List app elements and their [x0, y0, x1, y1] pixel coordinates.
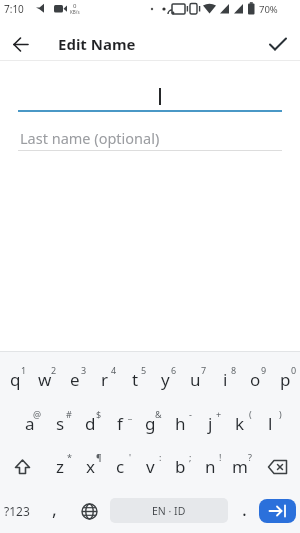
- staticText: !: [219, 451, 222, 463]
- staticText: ,: [52, 497, 57, 522]
- staticText: (: [249, 408, 252, 420]
- staticText: n: [205, 455, 216, 478]
- staticText: k: [235, 412, 245, 435]
- button[interactable]: a: [15, 402, 45, 445]
- button[interactable]: .: [230, 489, 258, 533]
- button[interactable]: z: [45, 445, 75, 488]
- staticText: 70%: [259, 3, 278, 16]
- button[interactable]: ,: [38, 489, 70, 533]
- staticText: b: [175, 455, 186, 478]
- staticText: s: [56, 412, 65, 435]
- staticText: c: [116, 455, 125, 478]
- staticText: ': [129, 451, 132, 463]
- button[interactable]: [70, 489, 108, 533]
- button[interactable]: q: [0, 358, 30, 401]
- staticText: &: [155, 408, 162, 420]
- staticText: $: [96, 408, 102, 420]
- staticText: h: [175, 412, 186, 435]
- staticText: w: [38, 368, 52, 391]
- staticText: 3: [81, 364, 87, 376]
- button[interactable]: EN · ID: [110, 498, 228, 523]
- staticText: y: [161, 368, 170, 391]
- staticText: a: [25, 412, 35, 435]
- button[interactable]: [6, 29, 36, 59]
- button[interactable]: h: [165, 402, 195, 445]
- button[interactable]: b: [165, 445, 195, 488]
- button[interactable]: o: [240, 358, 270, 401]
- button[interactable]: v: [135, 445, 165, 488]
- staticText: 7:10: [4, 2, 24, 16]
- button[interactable]: [259, 499, 296, 523]
- staticText: x: [86, 455, 95, 478]
- button[interactable]: [0, 445, 45, 488]
- button[interactable]: Last name (optional): [18, 126, 282, 152]
- button[interactable]: i: [210, 358, 240, 401]
- staticText: KB/s: [70, 9, 80, 15]
- button[interactable]: m: [225, 445, 255, 488]
- staticText: Edit Name: [58, 34, 136, 54]
- staticText: +: [216, 408, 222, 420]
- button[interactable]: n: [195, 445, 225, 488]
- staticText: t: [132, 368, 139, 391]
- button[interactable]: p: [270, 358, 300, 401]
- staticText: m: [232, 455, 248, 478]
- button[interactable]: w: [30, 358, 60, 401]
- button[interactable]: s: [45, 402, 75, 445]
- staticText: 2: [51, 364, 57, 376]
- staticText: o: [250, 368, 261, 391]
- staticText: -: [189, 408, 192, 420]
- staticText: 0: [291, 364, 297, 376]
- staticText: i: [223, 368, 228, 391]
- staticText: j: [208, 412, 213, 435]
- button[interactable]: e: [60, 358, 90, 401]
- staticText: Last name (optional): [20, 128, 160, 148]
- button[interactable]: k: [225, 402, 255, 445]
- staticText: g: [145, 412, 156, 435]
- staticText: l: [268, 412, 273, 435]
- button[interactable]: ?123: [0, 489, 34, 533]
- button[interactable]: x: [75, 445, 105, 488]
- staticText: 8: [231, 364, 237, 376]
- staticText: v: [146, 455, 155, 478]
- staticText: _: [128, 408, 132, 420]
- button[interactable]: j: [195, 402, 225, 445]
- staticText: #: [66, 408, 72, 420]
- staticText: :: [159, 451, 162, 463]
- staticText: 6: [171, 364, 177, 376]
- staticText: p: [280, 368, 291, 391]
- staticText: 5: [141, 364, 147, 376]
- staticText: r: [101, 368, 109, 391]
- staticText: EN · ID: [152, 504, 186, 518]
- button[interactable]: l: [255, 402, 285, 445]
- staticText: u: [190, 368, 201, 391]
- staticText: 1: [21, 364, 27, 376]
- staticText: q: [10, 368, 21, 391]
- button[interactable]: f: [105, 402, 135, 445]
- button[interactable]: [262, 29, 294, 59]
- staticText: 7: [201, 364, 207, 376]
- button[interactable]: y: [150, 358, 180, 401]
- staticText: 4: [111, 364, 117, 376]
- button[interactable]: u: [180, 358, 210, 401]
- staticText: .: [242, 497, 247, 522]
- button[interactable]: c: [105, 445, 135, 488]
- staticText: ¶: [96, 451, 102, 463]
- staticText: *: [67, 451, 72, 463]
- staticText: e: [70, 368, 80, 391]
- staticText: z: [56, 455, 64, 478]
- staticText: 9: [261, 364, 267, 376]
- staticText: ): [279, 408, 282, 420]
- staticText: @: [33, 408, 42, 420]
- button[interactable]: g: [135, 402, 165, 445]
- staticText: ;: [189, 451, 192, 463]
- button[interactable]: [255, 445, 300, 488]
- staticText: f: [117, 412, 123, 435]
- staticText: ?123: [4, 503, 30, 519]
- button[interactable]: d: [75, 402, 105, 445]
- button[interactable]: t: [120, 358, 150, 401]
- staticText: 0: [73, 2, 77, 10]
- button[interactable]: r: [90, 358, 120, 401]
- staticText: d: [85, 412, 96, 435]
- staticText: ?: [248, 451, 252, 463]
